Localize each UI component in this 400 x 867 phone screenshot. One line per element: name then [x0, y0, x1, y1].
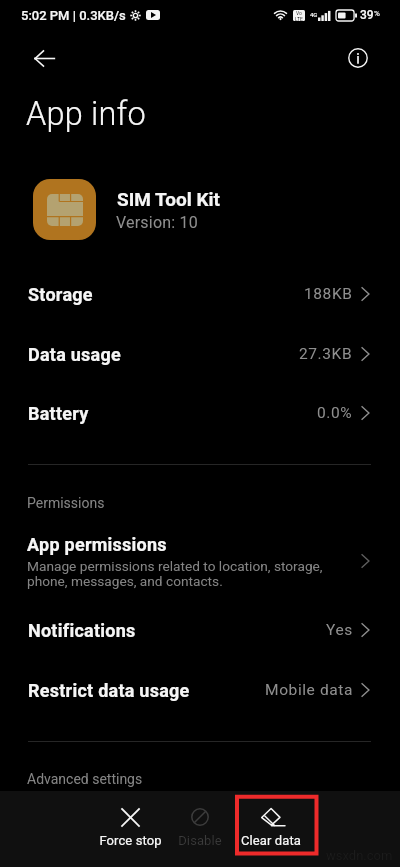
staticText: Manage permissions related to location, … [27, 558, 323, 590]
button[interactable]: App details [336, 36, 380, 80]
button[interactable]: Data usage [0, 328, 400, 380]
staticText: Notifications [28, 620, 136, 641]
staticText: Advanced settings [27, 771, 143, 787]
staticText: Force stop [99, 833, 162, 848]
staticText: SIM Tool Kit [117, 188, 221, 210]
staticText: App permissions [27, 534, 167, 555]
staticText: 27.3KB [299, 345, 353, 363]
button[interactable]: Back [22, 36, 66, 80]
staticText: 188KB [304, 285, 353, 303]
staticText: Clear data [241, 833, 301, 848]
button[interactable]: Restrict data usage [0, 664, 400, 716]
button[interactable]: Notifications [0, 604, 400, 656]
staticText: 5:02 PM | 0.3KB/s [21, 8, 126, 23]
staticText: 4G [310, 11, 318, 18]
staticText: App info [26, 95, 146, 133]
staticText: Permissions [27, 495, 105, 511]
staticText: Storage [28, 284, 93, 305]
staticText: Restrict data usage [28, 680, 190, 701]
staticText: 0.0% [317, 404, 353, 422]
button[interactable]: App permissions [0, 522, 400, 594]
staticText: Vo [296, 10, 302, 16]
staticText: Data usage [28, 344, 121, 365]
button[interactable]: Battery [0, 387, 400, 439]
staticText: 39 [360, 8, 374, 22]
staticText: Mobile data [265, 681, 353, 699]
button[interactable]: Storage [0, 268, 400, 320]
staticText: Disable [178, 833, 222, 848]
button[interactable]: Force stop [95, 808, 165, 864]
staticText: LTE [295, 16, 303, 21]
button[interactable]: Clear data [236, 808, 306, 864]
staticText: Yes [326, 621, 353, 639]
staticText: % [374, 9, 380, 18]
button[interactable]: Disable [165, 808, 235, 864]
staticText: Version: 10 [116, 213, 198, 232]
staticText: Battery [28, 403, 89, 424]
